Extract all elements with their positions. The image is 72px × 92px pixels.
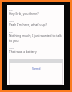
staticText: Yeah I'm here, what's up? — [9, 23, 47, 27]
staticText: Erik — [9, 9, 13, 12]
staticText: Anna — [9, 47, 14, 50]
staticText: Nothing much, I just wanted to talk to y… — [9, 34, 62, 43]
staticText: Send — [32, 66, 41, 71]
staticText: Anna — [9, 20, 14, 23]
staticText: That was a battery — [9, 50, 37, 54]
staticText: Erik — [9, 31, 13, 34]
button[interactable]: Send — [32, 66, 41, 71]
staticText: Hey Erik, you there? — [9, 12, 39, 16]
